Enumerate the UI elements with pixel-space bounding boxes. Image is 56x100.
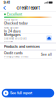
- staticText: See full report: [10, 91, 32, 95]
- button[interactable]: See full report: [2, 89, 54, 97]
- staticText: See what you could borrow: [4, 37, 27, 43]
- staticText: Pre-approved offers: [4, 55, 28, 58]
- staticText: See all: [41, 53, 52, 56]
- button[interactable]: Credit cards: [0, 51, 56, 58]
- button[interactable]: Next update: [0, 26, 56, 33]
- staticText: In 24 days: [4, 29, 21, 33]
- button[interactable]: Your score: [0, 18, 56, 25]
- staticText: Next update: [4, 26, 18, 29]
- staticText: Excellent: [7, 12, 22, 16]
- staticText: 9:41: [3, 0, 9, 5]
- staticText: Mortgages: [4, 33, 21, 37]
- button[interactable]: Back: [1, 5, 8, 11]
- staticText: Credit report: [16, 6, 39, 10]
- staticText: Products and services: [4, 45, 40, 49]
- button[interactable]: Mortgages: [0, 34, 56, 42]
- staticText: Credit cards: [4, 51, 23, 55]
- staticText: Checked today: [4, 21, 28, 25]
- staticText: Your score: [4, 18, 17, 21]
